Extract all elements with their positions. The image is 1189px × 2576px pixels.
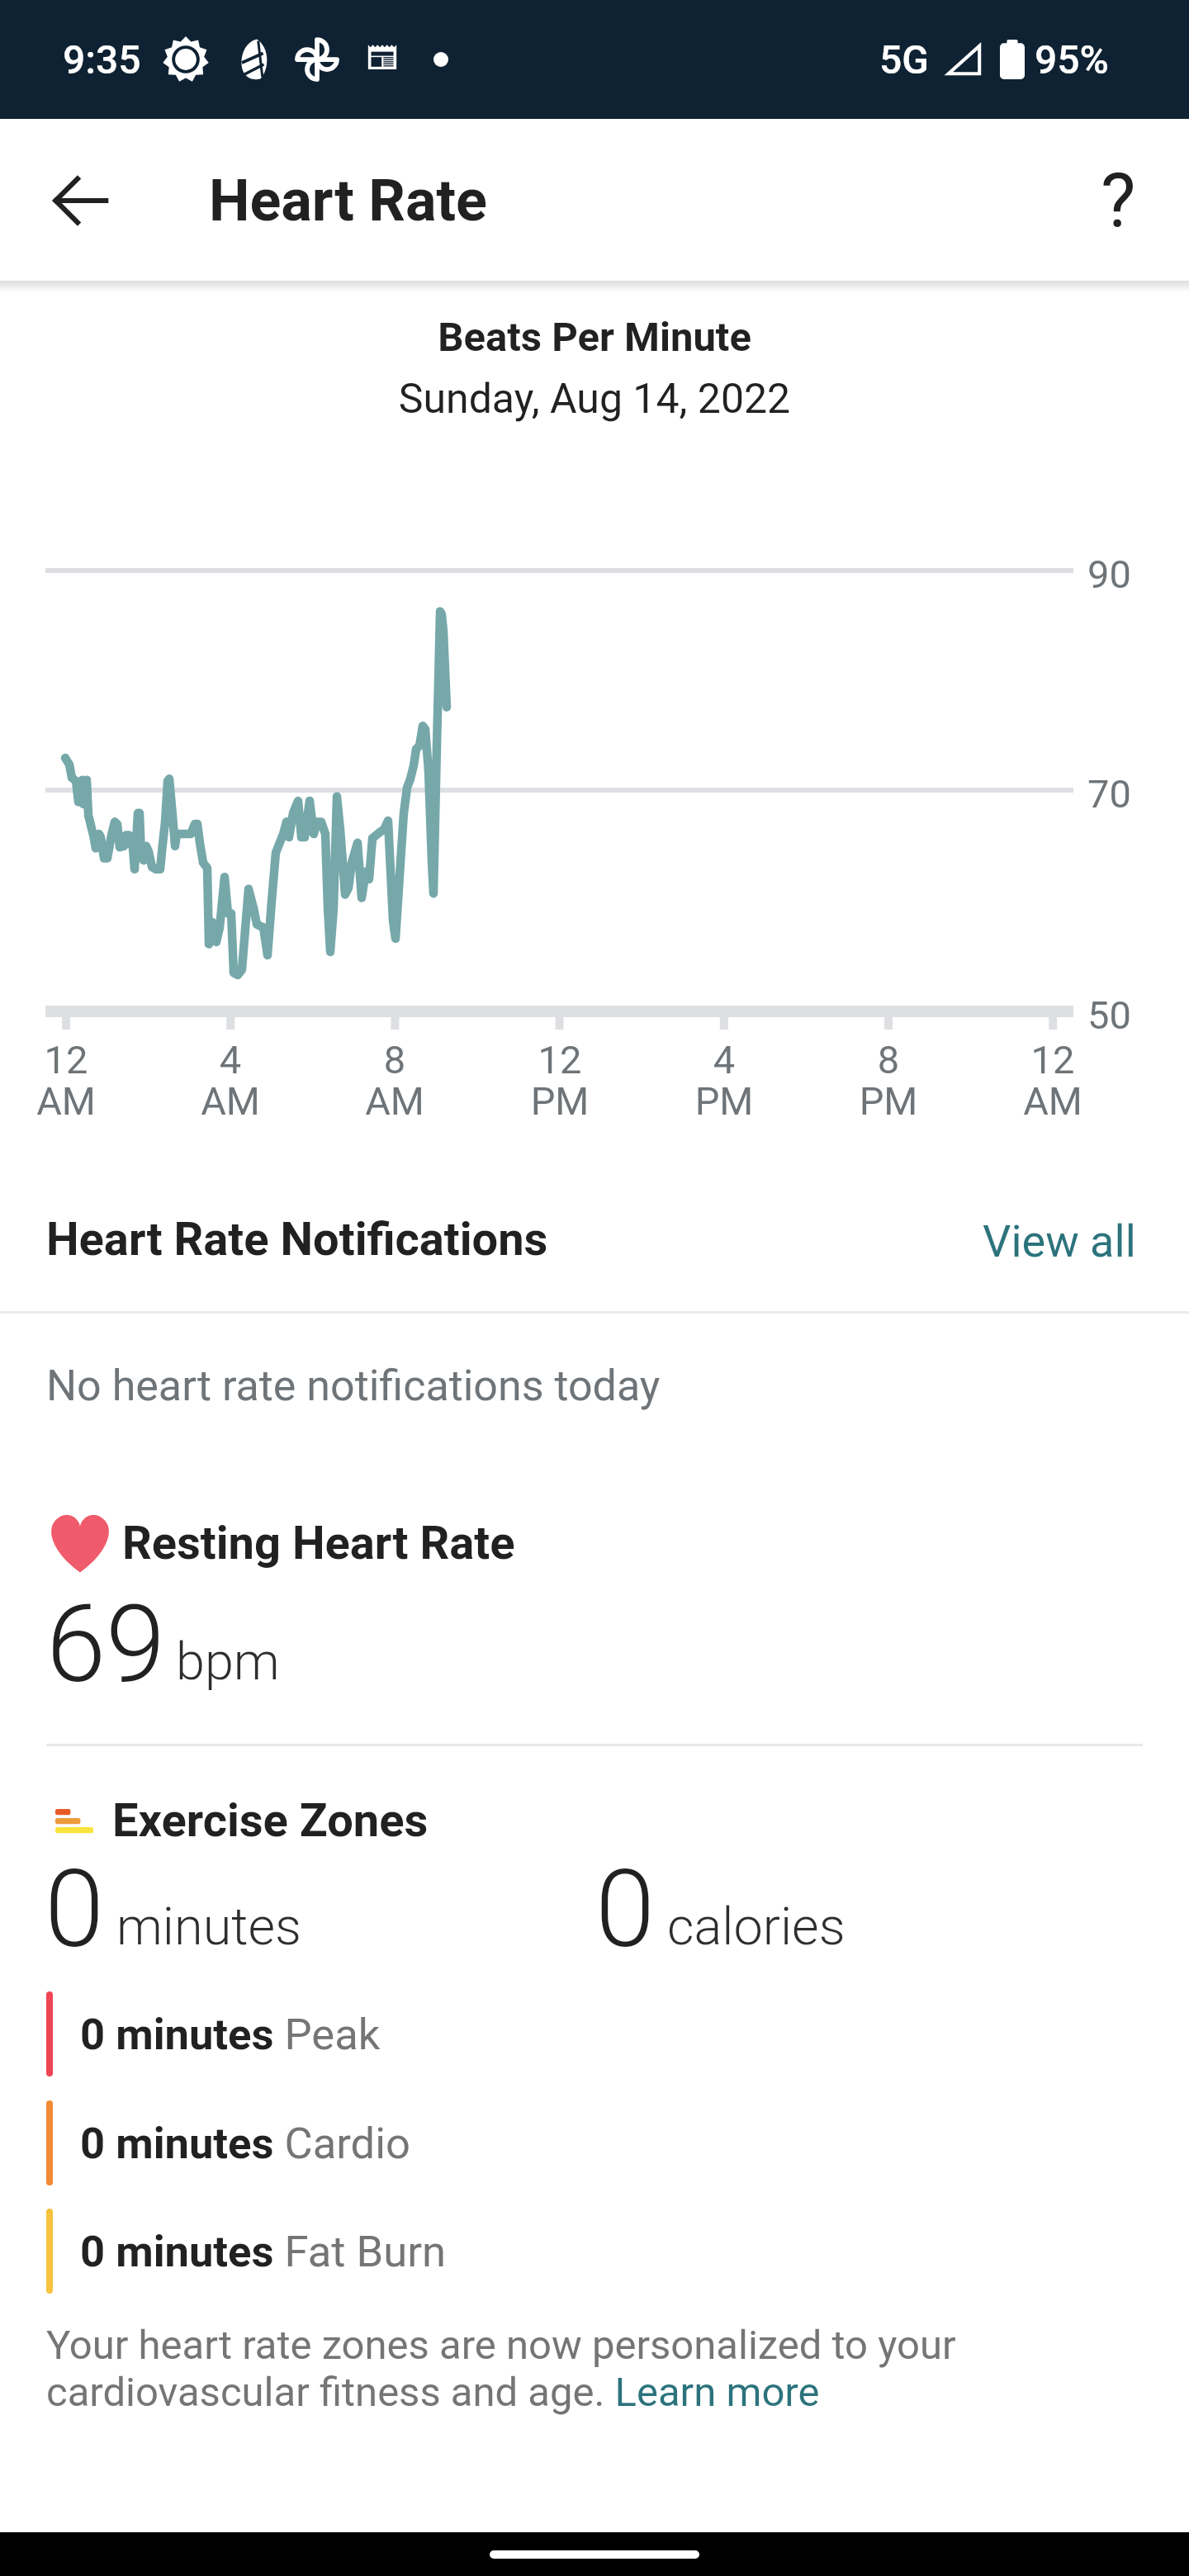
staticText: 0 minutes Fat Burn [80, 2226, 446, 2277]
staticText: 95% [1035, 36, 1109, 83]
button[interactable]: View all [978, 1209, 1141, 1270]
staticText: bpm [176, 1631, 280, 1693]
staticText: 70 [1087, 771, 1131, 817]
staticText: 8 PM [806, 1037, 971, 1124]
staticText: 0 [45, 1846, 105, 1972]
staticText: Your heart rate zones are now personaliz… [46, 2322, 1103, 2416]
staticText: Heart Rate Notifications [46, 1212, 548, 1267]
button[interactable]: Help [1065, 148, 1171, 253]
staticText: 4 AM [148, 1037, 313, 1124]
staticText: calories [667, 1896, 846, 1958]
staticText: 12 AM [970, 1037, 1135, 1124]
staticText: 4 PM [642, 1037, 807, 1124]
staticText: No heart rate notifications today [46, 1361, 661, 1411]
staticText: 9:35 [63, 36, 141, 83]
staticText: 0 [595, 1846, 656, 1972]
staticText: ? [1101, 158, 1136, 244]
button[interactable]: 0 minutes Fat Burn [0, 2209, 1189, 2294]
staticText: Beats Per Minute [0, 314, 1189, 361]
staticText: Sunday, Aug 14, 2022 [0, 375, 1189, 424]
staticText: Exercise Zones [112, 1793, 429, 1848]
button[interactable]: Back [28, 148, 134, 253]
button[interactable]: 0 minutes Peak [0, 1991, 1189, 2076]
staticText: 5G [879, 36, 929, 83]
staticText: Heart Rate [209, 167, 487, 234]
staticText: 8 AM [312, 1037, 477, 1124]
staticText: 50 [1087, 992, 1131, 1038]
staticText: minutes [116, 1896, 302, 1958]
staticText: 69 [46, 1581, 166, 1707]
staticText: 0 minutes Peak [80, 2009, 381, 2060]
staticText: 0 minutes Cardio [80, 2118, 410, 2169]
staticText: 90 [1087, 552, 1131, 597]
staticText: 12 AM [0, 1037, 149, 1124]
staticText: Resting Heart Rate [122, 1516, 515, 1570]
staticText: View all [983, 1215, 1136, 1263]
button[interactable]: 0 minutes Cardio [0, 2100, 1189, 2185]
staticText: 12 PM [477, 1037, 642, 1124]
